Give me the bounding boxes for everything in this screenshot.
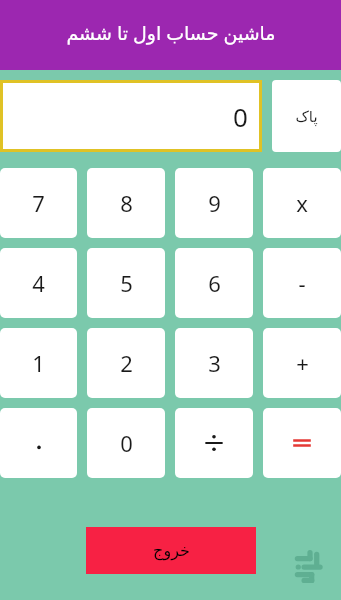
button[interactable]: 8 [87,168,165,238]
staticText: 2 [120,348,133,378]
button[interactable]: 9 [175,168,253,238]
staticText: 7 [32,188,45,218]
staticText: 9 [208,188,221,218]
staticText: 5 [120,268,133,298]
staticText: 0 [120,428,133,458]
button[interactable]: 7 [0,168,77,238]
button[interactable]: 1 [0,328,77,398]
button[interactable]: 3 [175,328,253,398]
button[interactable]: 5 [87,248,165,318]
button[interactable]: 2 [87,328,165,398]
button[interactable]: 0 [87,408,165,478]
staticText: - [298,268,306,298]
staticText: خروج [153,541,190,560]
staticText: 8 [120,188,133,218]
staticText: 6 [208,268,221,298]
button[interactable]: + [263,328,341,398]
button[interactable]: 6 [175,248,253,318]
staticText: 1 [32,348,45,378]
staticText: + [296,348,309,378]
button[interactable] [0,408,77,478]
button[interactable]: - [263,248,341,318]
button[interactable] [175,408,253,478]
button[interactable] [263,408,341,478]
staticText: 4 [32,268,45,298]
button[interactable]: 4 [0,248,77,318]
staticText: ماشین حساب اول تا ششم [66,20,276,46]
button[interactable]: خروج [86,527,256,574]
staticText: x [296,188,308,218]
staticText: 3 [208,348,221,378]
button[interactable]: x [263,168,341,238]
staticText: 0 [233,99,248,134]
button[interactable]: پاک [272,80,341,152]
staticText: پاک [295,108,318,125]
